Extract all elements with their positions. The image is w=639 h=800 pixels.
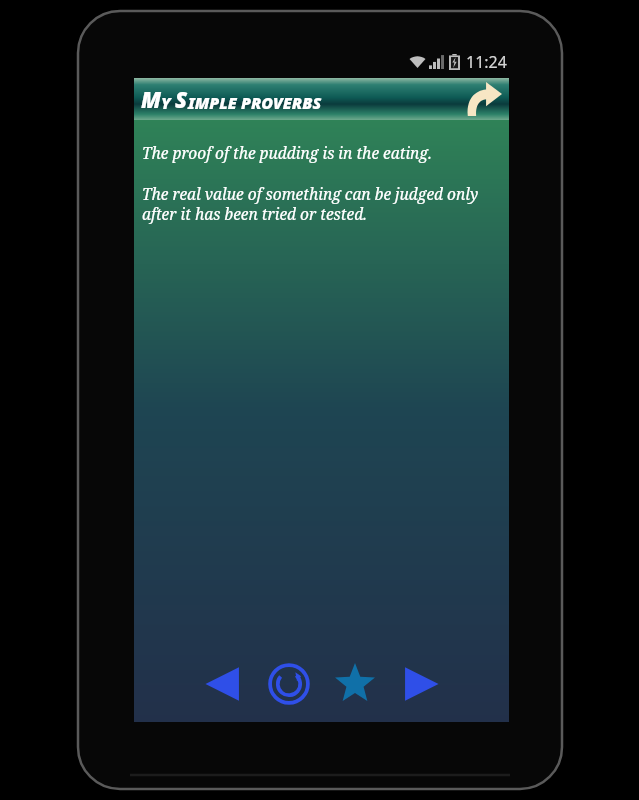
button[interactable]: Share <box>461 78 505 120</box>
staticText: The real value of something can be judge… <box>142 183 495 225</box>
button[interactable]: Next <box>395 658 447 710</box>
staticText: PROVERBS <box>241 92 322 114</box>
staticText: The proof of the pudding is in the eatin… <box>142 142 432 163</box>
staticText: 11:24 <box>466 51 507 73</box>
button[interactable]: Previous <box>197 658 249 710</box>
button[interactable]: Favorite <box>329 658 381 710</box>
staticText: M <box>141 84 161 114</box>
staticText: Y <box>161 92 175 114</box>
button[interactable]: Refresh <box>263 658 315 710</box>
staticText: IMPLE <box>188 92 241 114</box>
staticText: S <box>175 84 188 114</box>
